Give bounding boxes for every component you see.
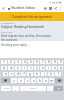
staticText: ?123 bbox=[4, 87, 9, 90]
button[interactable]: i bbox=[46, 66, 51, 70]
staticText: 3 bbox=[17, 60, 19, 64]
staticText: i bbox=[48, 66, 49, 70]
staticText: Student Inbox bbox=[11, 5, 36, 10]
staticText: b bbox=[39, 79, 41, 83]
button[interactable]: 1 bbox=[1, 60, 7, 64]
button[interactable]: r bbox=[22, 66, 27, 70]
staticText: f bbox=[23, 72, 25, 76]
staticText: q bbox=[3, 66, 5, 70]
staticText: h bbox=[36, 72, 38, 76]
staticText: j bbox=[44, 72, 45, 76]
button[interactable]: u bbox=[40, 66, 45, 70]
staticText: Complete this assignment bbox=[12, 15, 52, 19]
staticText: the questions. bbox=[1, 38, 19, 41]
button[interactable]: w bbox=[8, 66, 14, 70]
button[interactable]: More options bbox=[58, 6, 63, 11]
staticText: 8 bbox=[48, 60, 50, 64]
button[interactable]: y bbox=[34, 66, 39, 70]
button[interactable]: Complete this assignment bbox=[0, 12, 64, 21]
staticText: o bbox=[54, 66, 56, 70]
staticText: z bbox=[13, 79, 15, 83]
button[interactable]: c bbox=[25, 78, 30, 83]
button[interactable]: m bbox=[49, 78, 54, 83]
staticText: 5 bbox=[30, 60, 32, 64]
button[interactable]: Backspace bbox=[55, 78, 63, 83]
button[interactable]: d bbox=[15, 72, 20, 76]
staticText: 1 bbox=[3, 60, 5, 64]
button[interactable]: . bbox=[47, 86, 53, 91]
staticText: . bbox=[50, 87, 51, 91]
button[interactable]: 9 bbox=[52, 60, 57, 64]
button[interactable]: v bbox=[31, 78, 36, 83]
button[interactable]: e bbox=[15, 66, 21, 70]
staticText: w bbox=[10, 66, 13, 70]
staticText: Hello class, bbox=[1, 31, 13, 34]
button[interactable]: Delete bbox=[48, 6, 53, 11]
staticText: 9 bbox=[54, 60, 56, 64]
button[interactable]: p bbox=[58, 66, 63, 70]
button[interactable]: q bbox=[1, 66, 7, 70]
button[interactable]: l bbox=[55, 72, 61, 76]
button[interactable]: Back bbox=[1, 6, 6, 11]
button[interactable]: Enter bbox=[54, 86, 63, 91]
staticText: Subject: Reading Homework bbox=[1, 25, 44, 29]
staticText: u bbox=[42, 66, 44, 70]
button[interactable]: x bbox=[18, 78, 24, 83]
staticText: d bbox=[17, 72, 19, 76]
button[interactable]: ?123 bbox=[1, 86, 11, 91]
button[interactable]: Archive bbox=[43, 6, 48, 11]
staticText: 2 bbox=[10, 60, 12, 64]
button[interactable]: 4 bbox=[22, 60, 27, 64]
button[interactable]: o bbox=[52, 66, 57, 70]
staticText: x bbox=[20, 79, 22, 83]
button[interactable]: h bbox=[34, 72, 40, 76]
button[interactable]: a bbox=[3, 72, 8, 76]
staticText: k bbox=[50, 72, 52, 76]
staticText: 0 bbox=[60, 60, 62, 64]
button[interactable]: n bbox=[43, 78, 48, 83]
button[interactable]: b bbox=[37, 78, 42, 83]
button[interactable]: Shift bbox=[1, 78, 10, 83]
button[interactable]: 2 bbox=[8, 60, 14, 64]
staticText: m bbox=[50, 79, 53, 83]
staticText: Sending your reply... bbox=[1, 43, 29, 47]
staticText: v bbox=[33, 79, 35, 83]
button[interactable]: t bbox=[28, 66, 33, 70]
button[interactable]: 5 bbox=[28, 60, 33, 64]
staticText: l bbox=[58, 72, 59, 76]
staticText: Read chapters four and five, then answer bbox=[1, 34, 52, 38]
staticText: s bbox=[11, 72, 13, 76]
button[interactable]: s bbox=[9, 72, 14, 76]
button[interactable]: j bbox=[41, 72, 47, 76]
staticText: p bbox=[60, 66, 62, 70]
button[interactable]: 6 bbox=[34, 60, 39, 64]
button[interactable]: 3 bbox=[15, 60, 21, 64]
button[interactable]: 7 bbox=[40, 60, 45, 64]
staticText: 7 bbox=[42, 60, 44, 64]
staticText: 6 bbox=[36, 60, 38, 64]
button[interactable]: z bbox=[11, 78, 17, 83]
staticText: Assignment bbox=[1, 22, 14, 25]
staticText: g bbox=[29, 72, 31, 76]
staticText: , bbox=[15, 87, 16, 91]
staticText: a bbox=[5, 72, 7, 76]
staticText: r bbox=[24, 66, 26, 70]
staticText: n bbox=[45, 79, 47, 83]
button[interactable]: Space bbox=[20, 86, 46, 91]
button[interactable]: 0 bbox=[58, 60, 63, 64]
button[interactable]: f bbox=[21, 72, 26, 76]
staticText: e bbox=[17, 66, 19, 70]
button[interactable]: k bbox=[48, 72, 54, 76]
button[interactable]: g bbox=[27, 72, 33, 76]
button[interactable]: Share bbox=[53, 6, 58, 11]
button[interactable]: 8 bbox=[46, 60, 51, 64]
staticText: 4 bbox=[24, 60, 26, 64]
staticText: c bbox=[27, 79, 29, 83]
staticText: t bbox=[30, 66, 32, 70]
staticText: y bbox=[36, 66, 38, 70]
button[interactable]: , bbox=[12, 86, 19, 91]
